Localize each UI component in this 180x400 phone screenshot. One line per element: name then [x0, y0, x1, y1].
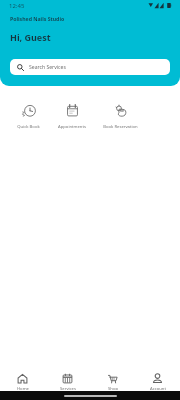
- staticText: Home: [17, 386, 29, 390]
- staticText: Polished Nails Studio: [10, 15, 65, 22]
- staticText: Appointments: [58, 124, 86, 130]
- button[interactable]: Services: [45, 369, 90, 391]
- button[interactable]: Search Services: [10, 59, 170, 75]
- button[interactable]: Shop: [90, 369, 135, 391]
- staticText: Book Reservation: [103, 124, 138, 130]
- button[interactable]: Book Reservation: [99, 103, 141, 130]
- staticText: Hi, Guest: [10, 31, 51, 43]
- button[interactable]: Home: [0, 369, 45, 391]
- button[interactable]: Appointments: [51, 103, 93, 130]
- button[interactable]: Quick Book: [7, 103, 49, 130]
- staticText: Services: [60, 386, 76, 390]
- staticText: Quick Book: [17, 124, 40, 130]
- button[interactable]: Account: [135, 369, 180, 391]
- staticText: Search Services: [29, 64, 66, 71]
- staticText: Shop: [108, 386, 118, 390]
- staticText: Account: [150, 386, 166, 390]
- staticText: 12:45: [9, 2, 25, 10]
